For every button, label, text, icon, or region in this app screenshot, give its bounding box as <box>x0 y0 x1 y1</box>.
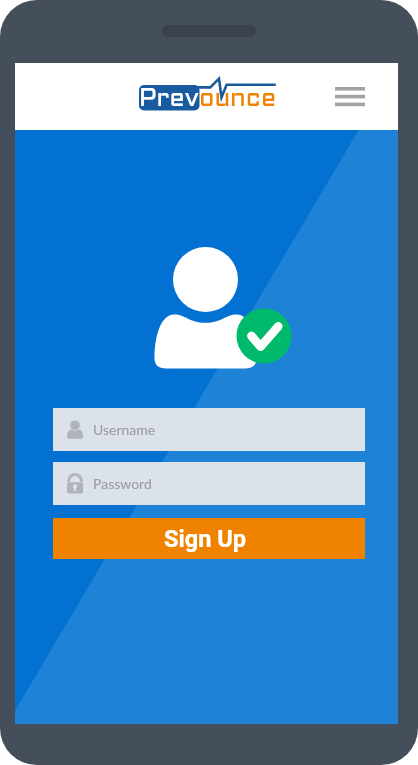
button[interactable]: Open navigation menu <box>320 74 380 119</box>
staticText: Sign Up <box>164 525 247 553</box>
button[interactable]: Username <box>53 408 365 451</box>
button[interactable]: Password <box>53 462 365 505</box>
button[interactable]: Sign Up <box>53 518 365 559</box>
staticText: Password <box>93 475 152 492</box>
staticText: Prevounce <box>139 88 277 112</box>
staticText: Username <box>93 421 156 438</box>
